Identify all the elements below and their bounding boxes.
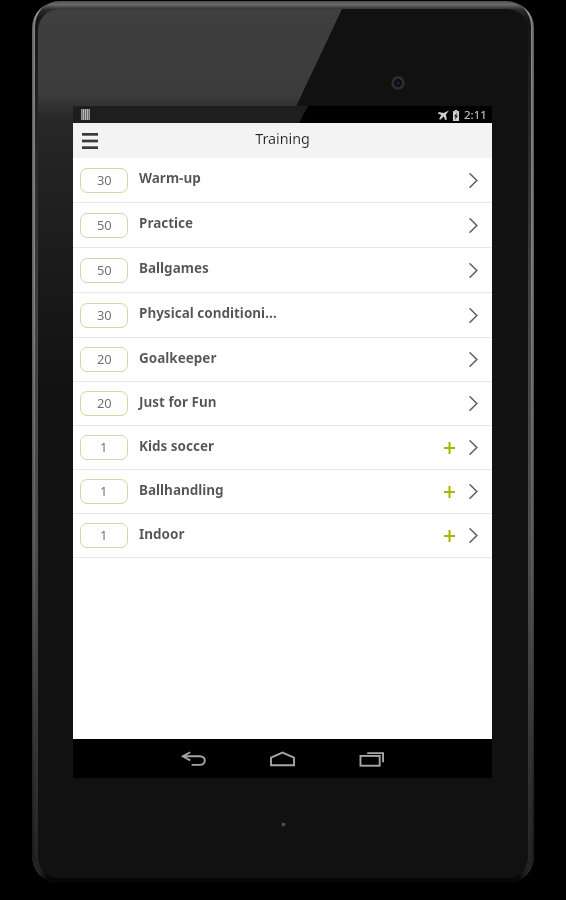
button[interactable]: 30 [73, 158, 492, 203]
button[interactable]: Menu [73, 123, 107, 158]
staticText: Indoor [139, 525, 437, 543]
staticText: Practice [139, 214, 469, 232]
button[interactable]: 20 [73, 338, 492, 382]
button[interactable]: Add [437, 480, 461, 504]
button[interactable]: 1 [73, 426, 492, 470]
staticText: 30 [97, 171, 112, 189]
staticText: Warm-up [139, 169, 469, 187]
button[interactable]: 1 [73, 470, 492, 514]
button[interactable]: 50 [73, 248, 492, 293]
staticText: Ballgames [139, 259, 469, 277]
button[interactable]: 50 [73, 203, 492, 248]
staticText: 50 [97, 216, 112, 234]
button[interactable]: 1 [73, 514, 492, 558]
staticText: Training [255, 129, 310, 148]
button[interactable]: Add [437, 524, 461, 548]
staticText: Just for Fun [139, 393, 469, 411]
staticText: 1 [100, 438, 108, 456]
staticText: Kids soccer [139, 437, 437, 455]
staticText: 1 [100, 526, 108, 544]
staticText: Ballhandling [139, 481, 437, 499]
staticText: 50 [97, 261, 112, 279]
staticText: 1 [100, 482, 108, 500]
button[interactable]: Add [437, 436, 461, 460]
button[interactable]: Recents [327, 739, 416, 778]
staticText: 2:11 [464, 107, 487, 123]
button[interactable]: Home [238, 739, 327, 778]
staticText: 20 [97, 394, 112, 412]
staticText: Physical conditioni… [139, 304, 469, 322]
button[interactable]: 30 [73, 293, 492, 338]
staticText: 20 [97, 350, 112, 368]
staticText: 30 [97, 306, 112, 324]
button[interactable]: 20 [73, 382, 492, 426]
staticText: Goalkeeper [139, 349, 469, 367]
button[interactable]: Back [149, 739, 238, 778]
